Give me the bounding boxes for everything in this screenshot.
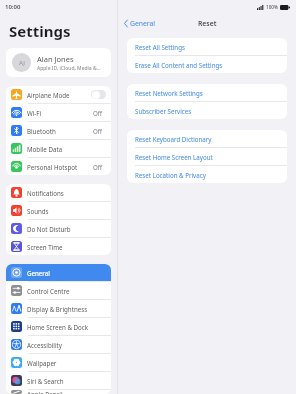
staticText: Apple ID, iCloud, Media &... — [37, 65, 101, 72]
staticText: Screen Time — [27, 243, 106, 251]
staticText: Sounds — [27, 207, 106, 215]
button[interactable]: Notifications — [6, 184, 111, 201]
button[interactable]: Bluetooth — [6, 122, 111, 139]
staticText: Home Screen & Dock — [27, 323, 106, 331]
button[interactable]: Reset Home Screen Layout — [127, 148, 287, 165]
button[interactable]: AJ — [6, 48, 111, 77]
staticText: Display & Brightness — [27, 305, 106, 313]
staticText: General — [27, 269, 106, 277]
staticText: General — [130, 19, 156, 28]
staticText: Wallpaper — [27, 359, 106, 367]
button[interactable]: Siri & Search — [6, 372, 111, 389]
button[interactable]: Wi-Fi — [6, 104, 111, 121]
staticText: Notifications — [27, 189, 106, 197]
button[interactable]: Accessibility — [6, 336, 111, 353]
staticText: Erase All Content and Settings — [135, 61, 223, 69]
staticText: Mobile Data — [27, 145, 106, 153]
staticText: Settings — [9, 21, 71, 41]
button[interactable]: Reset Keyboard Dictionary — [127, 130, 287, 147]
staticText: Personal Hotspot — [27, 163, 93, 171]
staticText: Off — [93, 163, 103, 171]
button[interactable]: Display & Brightness — [6, 300, 111, 317]
staticText: Reset Location & Privacy — [135, 171, 206, 179]
button[interactable]: Control Centre — [6, 282, 111, 299]
staticText: Apple Pencil — [27, 390, 106, 394]
button[interactable]: Do Not Disturb — [6, 220, 111, 237]
staticText: 100% — [266, 4, 278, 10]
staticText: Subscriber Services — [135, 107, 192, 115]
staticText: Reset Home Screen Layout — [135, 153, 213, 161]
staticText: Reset All Settings — [135, 43, 185, 51]
button[interactable]: Wallpaper — [6, 354, 111, 371]
button[interactable]: Mobile Data — [6, 140, 111, 157]
staticText: Control Centre — [27, 287, 106, 295]
button[interactable]: Reset All Settings — [127, 38, 287, 55]
staticText: Do Not Disturb — [27, 225, 106, 233]
staticText: Siri & Search — [27, 377, 106, 385]
staticText: Accessibility — [27, 341, 106, 349]
button[interactable]: General — [118, 16, 160, 31]
button[interactable]: Screen Time — [6, 238, 111, 255]
staticText: Bluetooth — [27, 127, 93, 135]
staticText: Reset — [198, 19, 217, 28]
staticText: Reset Keyboard Dictionary — [135, 135, 212, 143]
staticText: Off — [93, 109, 103, 117]
button[interactable]: Erase All Content and Settings — [127, 56, 287, 73]
staticText: Airplane Mode — [27, 91, 91, 99]
button[interactable]: Sounds — [6, 202, 111, 219]
staticText: 10:00 — [5, 3, 21, 11]
button[interactable]: Reset Network Settings — [127, 84, 287, 101]
button[interactable]: Subscriber Services — [127, 102, 287, 119]
button[interactable]: Personal Hotspot — [6, 158, 111, 175]
staticText: AJ — [19, 59, 25, 67]
button[interactable]: Airplane Mode toggle — [91, 90, 106, 99]
staticText: Alan Jones — [37, 54, 74, 64]
staticText: Off — [93, 127, 103, 135]
button[interactable]: General — [6, 264, 111, 281]
staticText: Reset Network Settings — [135, 89, 203, 97]
button[interactable]: Airplane Mode — [6, 86, 111, 103]
staticText: Wi-Fi — [27, 109, 93, 117]
button[interactable]: Apple Pencil — [6, 390, 111, 394]
button[interactable]: Reset Location & Privacy — [127, 166, 287, 183]
button[interactable]: Home Screen & Dock — [6, 318, 111, 335]
